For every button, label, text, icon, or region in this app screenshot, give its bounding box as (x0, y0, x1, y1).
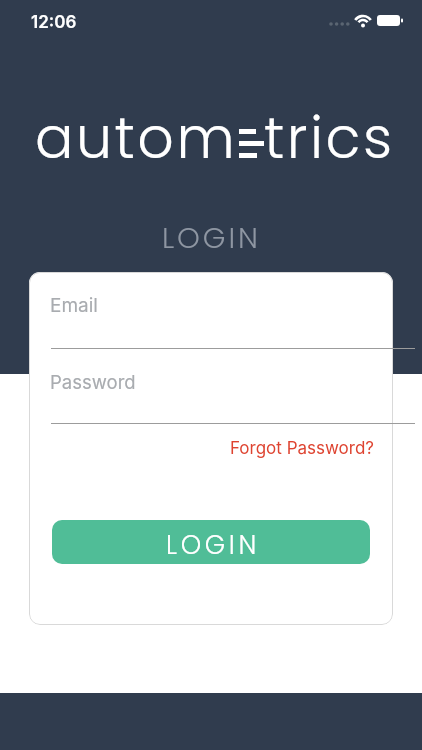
button[interactable]: Forgot Password? (230, 438, 375, 459)
staticText: Password (50, 371, 136, 393)
staticText: 12:06 (31, 12, 77, 33)
button[interactable]: LOGIN (52, 520, 370, 564)
staticText: LOGIN (162, 218, 261, 259)
staticText: trics (264, 98, 395, 178)
staticText: Email (50, 294, 98, 317)
button[interactable]: Email (52, 288, 393, 352)
button[interactable]: Password (52, 366, 393, 429)
staticText: LOGIN (166, 527, 261, 563)
staticText: autom (35, 98, 238, 178)
